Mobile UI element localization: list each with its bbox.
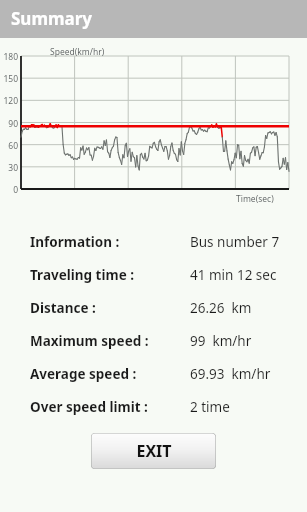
- button[interactable]: EXIT: [91, 433, 216, 469]
- staticText: 0: [13, 184, 18, 196]
- staticText: 41 min 12 sec: [190, 266, 277, 284]
- staticText: Average speed :: [30, 365, 137, 383]
- staticText: Speed(km/hr): [50, 46, 105, 58]
- staticText: 2 time: [190, 398, 230, 416]
- staticText: 150: [3, 73, 18, 85]
- staticText: 69.93 km/hr: [190, 365, 271, 383]
- staticText: 26.26 km: [190, 299, 252, 317]
- staticText: 90: [8, 118, 18, 130]
- button[interactable]: Average speed :: [0, 357, 307, 390]
- staticText: Maximum speed :: [30, 332, 149, 350]
- staticText: Distance :: [30, 299, 96, 317]
- staticText: Traveling time :: [30, 266, 135, 284]
- button[interactable]: Traveling time :: [0, 258, 307, 291]
- staticText: Information :: [30, 233, 120, 251]
- button[interactable]: Maximum speed :: [0, 324, 307, 357]
- staticText: 99 km/hr: [190, 332, 252, 350]
- staticText: EXIT: [136, 440, 172, 462]
- button[interactable]: Distance :: [0, 291, 307, 324]
- staticText: 180: [3, 51, 18, 63]
- staticText: 60: [8, 140, 18, 152]
- button[interactable]: Information :: [0, 225, 307, 258]
- staticText: Summary: [11, 7, 93, 30]
- staticText: Time(sec): [236, 193, 274, 205]
- staticText: Over speed limit :: [30, 398, 148, 416]
- staticText: 120: [3, 95, 18, 107]
- button[interactable]: Over speed limit :: [0, 390, 307, 423]
- staticText: 30: [8, 162, 18, 174]
- staticText: Bus number 7: [190, 233, 280, 251]
